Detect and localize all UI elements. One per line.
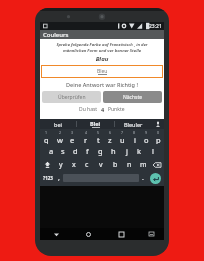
staticText: e <box>70 135 75 144</box>
button[interactable]: Back <box>40 228 72 240</box>
staticText: Blei <box>90 120 101 127</box>
button[interactable]: l <box>146 144 159 158</box>
staticText: n <box>127 160 132 170</box>
staticText: Blau <box>40 55 164 63</box>
button[interactable]: 3 <box>66 130 79 144</box>
staticText: v <box>99 160 103 170</box>
staticText: bei <box>54 121 62 128</box>
staticText: Couleurs <box>43 31 69 39</box>
staticText: . <box>142 173 144 183</box>
staticText: f <box>86 146 89 156</box>
staticText: h <box>111 146 116 156</box>
button[interactable]: Enter <box>147 171 163 185</box>
button[interactable]: Shift <box>40 158 54 171</box>
button[interactable]: 1 <box>40 130 53 144</box>
button[interactable]: y <box>54 158 67 171</box>
button[interactable]: Bleu <box>41 65 163 78</box>
staticText: 2 <box>59 130 62 135</box>
staticText: u <box>120 135 125 144</box>
staticText: b <box>113 160 118 170</box>
staticText: m <box>140 160 147 170</box>
staticText: c <box>85 160 89 170</box>
button[interactable]: Nächste <box>103 91 162 103</box>
button[interactable]: j <box>120 144 133 158</box>
button[interactable]: m <box>136 158 150 171</box>
staticText: q <box>44 135 49 144</box>
button[interactable]: f <box>81 144 94 158</box>
button[interactable]: x <box>67 158 80 171</box>
staticText: g <box>98 146 103 156</box>
button[interactable]: 4 <box>79 130 92 144</box>
staticText: , <box>58 173 60 183</box>
button[interactable]: v <box>94 158 108 171</box>
staticText: ?123 <box>43 175 53 181</box>
staticText: o <box>144 135 149 144</box>
button[interactable]: k <box>133 144 146 158</box>
staticText: k <box>137 146 142 156</box>
staticText: Punkte <box>108 106 125 113</box>
button[interactable]: 0 <box>152 130 164 144</box>
staticText: l <box>152 146 154 156</box>
button[interactable]: bei <box>40 119 76 129</box>
button[interactable]: Voice input <box>152 119 164 129</box>
button[interactable]: Switch keyboard <box>138 228 164 240</box>
staticText: 4 <box>101 106 105 113</box>
staticText: t <box>97 135 100 144</box>
staticText: Bleuler <box>124 121 143 128</box>
button[interactable]: Überprüfen <box>42 91 101 103</box>
staticText: Überprüfen <box>58 94 86 101</box>
staticText: 23:21 <box>149 23 162 30</box>
staticText: d <box>73 146 78 156</box>
staticText: i <box>134 135 136 144</box>
button[interactable]: 6 <box>104 130 116 144</box>
staticText: j <box>126 146 128 156</box>
staticText: 4 <box>85 130 88 135</box>
staticText: Sprehe folgende Farbe auf Französisch , … <box>45 42 159 54</box>
button[interactable]: d <box>69 144 81 158</box>
button[interactable]: s <box>57 144 69 158</box>
button[interactable]: Backspace <box>150 158 164 171</box>
staticText: Du hast <box>79 106 98 113</box>
button[interactable]: g <box>94 144 107 158</box>
staticText: s <box>61 146 65 156</box>
button[interactable]: Recents <box>105 228 138 240</box>
staticText: 7 <box>121 130 124 135</box>
staticText: Bleu <box>97 68 108 75</box>
button[interactable]: n <box>122 158 136 171</box>
staticText: p <box>156 135 161 144</box>
staticText: y <box>59 160 63 170</box>
staticText: Nächste <box>123 94 143 101</box>
staticText: 1 <box>45 130 48 135</box>
staticText: z <box>108 135 112 144</box>
button[interactable]: 5 <box>92 130 104 144</box>
staticText: x <box>72 160 76 170</box>
staticText: 0 <box>157 130 160 135</box>
staticText: a <box>49 146 54 156</box>
button[interactable]: a <box>45 144 57 158</box>
button[interactable]: 9 <box>140 130 152 144</box>
staticText: w <box>57 135 63 144</box>
button[interactable]: b <box>108 158 122 171</box>
button[interactable]: 8 <box>128 130 140 144</box>
button[interactable]: h <box>107 144 120 158</box>
button[interactable]: Couleurs <box>40 30 164 39</box>
staticText: Deine Antwort war Richtig ! <box>40 81 164 88</box>
staticText: 3 <box>71 130 74 135</box>
button[interactable]: c <box>80 158 94 171</box>
button[interactable]: Period <box>139 171 147 185</box>
staticText: 6 <box>109 130 112 135</box>
staticText: 8 <box>133 130 136 135</box>
button[interactable]: Blei <box>77 119 114 129</box>
button[interactable]: 2 <box>53 130 66 144</box>
staticText: 9 <box>145 130 148 135</box>
button[interactable]: Bleuler <box>115 119 152 129</box>
button[interactable]: Comma <box>55 171 63 185</box>
staticText: r <box>84 135 88 144</box>
button[interactable]: 7 <box>116 130 128 144</box>
button[interactable]: Home <box>72 228 105 240</box>
button[interactable]: ?123 <box>41 171 55 185</box>
staticText: 5 <box>97 130 100 135</box>
